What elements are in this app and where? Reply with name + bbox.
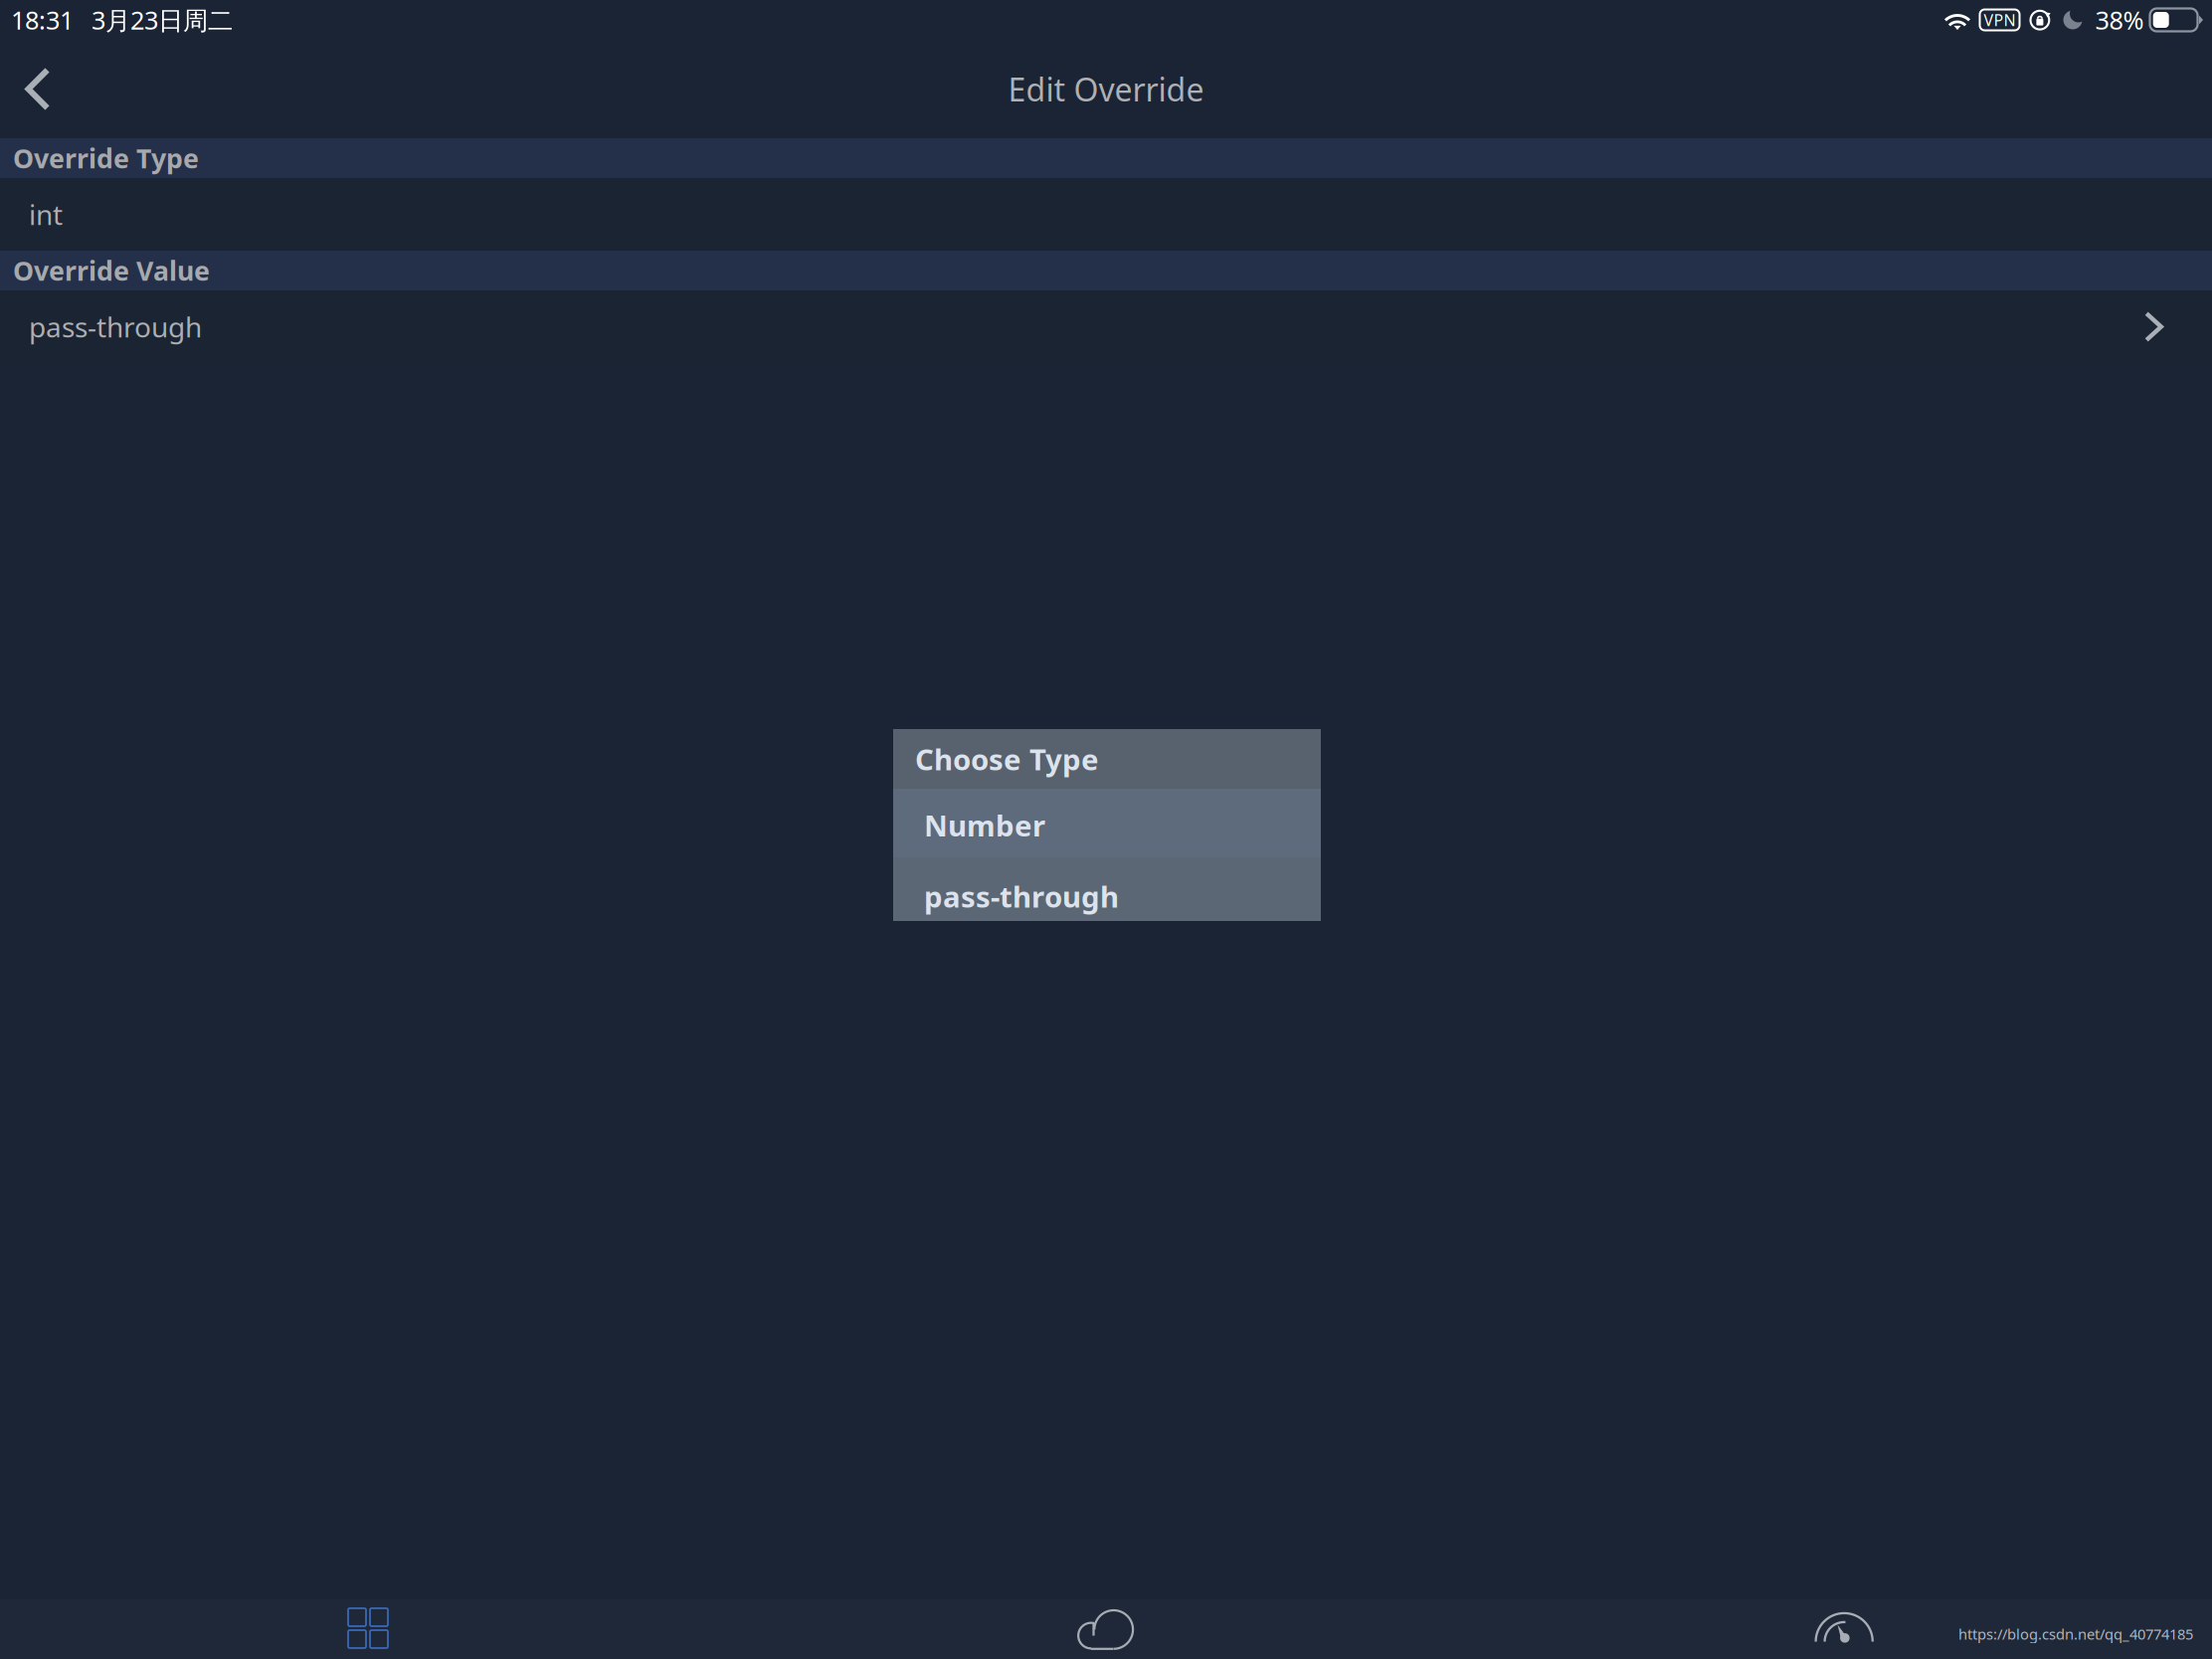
staticText: Edit Override	[1008, 68, 1204, 110]
staticText: Override Type	[13, 141, 199, 176]
staticText: Number	[924, 806, 1045, 844]
staticText: 18:31	[11, 3, 74, 37]
staticText: VPN	[1984, 9, 2016, 30]
button[interactable]: pass-through	[893, 857, 1321, 921]
button[interactable]: App grid	[342, 1602, 394, 1654]
staticText: 38%	[2095, 3, 2144, 37]
staticText: pass-through	[29, 308, 202, 345]
staticText: pass-through	[924, 877, 1119, 916]
button[interactable]: pass-through	[0, 290, 2212, 363]
staticText: https://blog.csdn.net/qq_40774185	[1958, 1624, 2193, 1644]
staticText: int	[29, 196, 63, 233]
button[interactable]: iCloud	[1072, 1603, 1140, 1655]
button[interactable]: Back	[12, 59, 64, 119]
staticText: 3月23日周二	[92, 3, 233, 37]
button[interactable]: Number	[893, 789, 1321, 857]
button[interactable]: int	[0, 178, 2212, 251]
button[interactable]: Performance	[1810, 1603, 1878, 1651]
staticText: Override Value	[13, 253, 210, 288]
staticText: Choose Type	[915, 739, 1099, 778]
